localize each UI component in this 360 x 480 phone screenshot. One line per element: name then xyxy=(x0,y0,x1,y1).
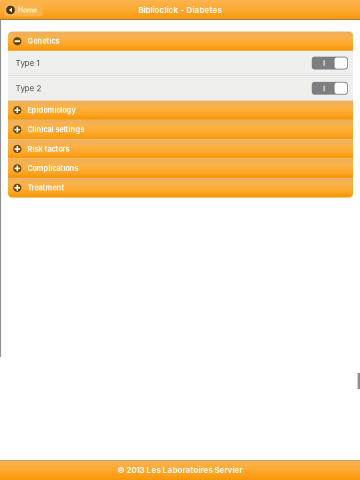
button[interactable]: Clinical settings xyxy=(8,120,353,139)
staticText: Complications xyxy=(28,164,79,173)
staticText: Home xyxy=(18,6,37,14)
button[interactable]: Home xyxy=(4,4,43,16)
staticText: Epidemiology xyxy=(28,106,76,115)
staticText: Risk factors xyxy=(28,145,70,153)
button[interactable]: Treatment xyxy=(8,178,353,197)
staticText: Clinical settings xyxy=(28,125,85,134)
button[interactable]: Genetics xyxy=(8,31,353,51)
button[interactable]: Complications xyxy=(8,159,353,178)
button[interactable]: Type 1 xyxy=(8,51,353,75)
staticText: © 2013 Les Laboratoires Servier xyxy=(117,465,242,475)
staticText: Treatment xyxy=(28,183,65,192)
button[interactable]: Risk factors xyxy=(8,139,353,159)
button[interactable]: Epidemiology xyxy=(8,100,353,120)
staticText: Type 2 xyxy=(15,83,41,93)
staticText: Genetics xyxy=(28,37,60,46)
button[interactable]: Type 2 xyxy=(8,76,353,100)
staticText: Type 1 xyxy=(15,58,39,68)
staticText: Biblioclick - Diabetes xyxy=(138,5,221,15)
